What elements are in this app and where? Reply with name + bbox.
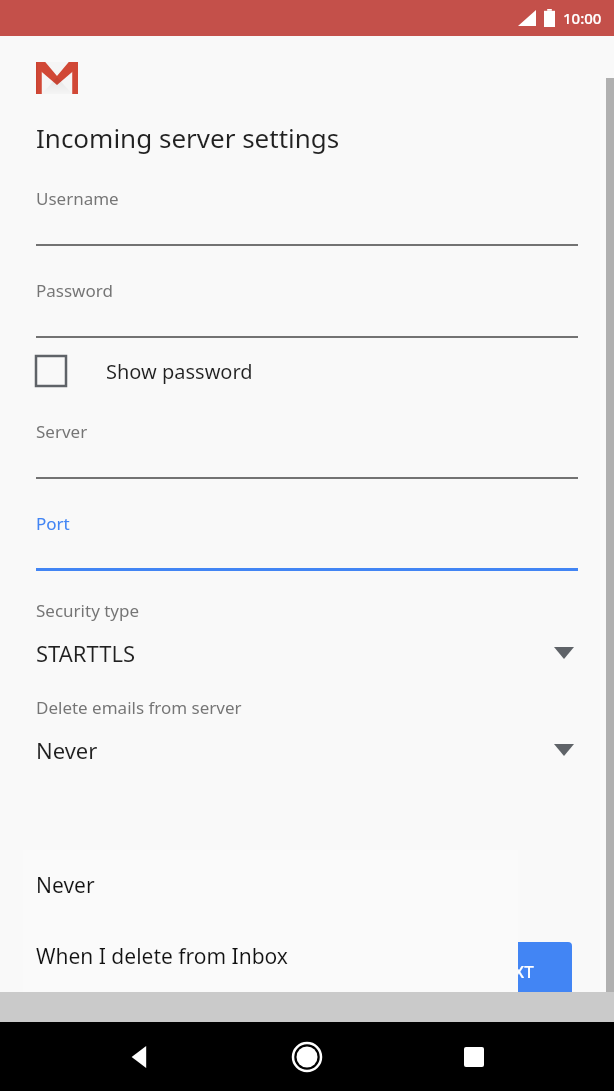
staticText: Port [36, 512, 70, 535]
staticText: Password [36, 279, 113, 302]
staticText: Server [36, 420, 88, 443]
staticText: Never [36, 871, 95, 900]
button[interactable]: Home [277, 1027, 337, 1087]
staticText: Username [36, 187, 119, 210]
button[interactable]: Delete emails from server [0, 696, 614, 765]
staticText: When I delete from Inbox [36, 942, 288, 971]
button[interactable]: NEXT [452, 942, 572, 1000]
button[interactable]: Show password [0, 346, 614, 396]
button[interactable]: Server [0, 420, 614, 479]
button[interactable]: Username [0, 187, 614, 246]
staticText: NEXT [491, 960, 534, 983]
button[interactable]: Recent apps [444, 1027, 504, 1087]
button[interactable]: When I delete from Inbox [23, 921, 518, 992]
button[interactable]: Security type [0, 599, 614, 668]
button[interactable]: Back [110, 1027, 170, 1087]
staticText: Show password [106, 358, 253, 385]
staticText: 10:00 [563, 8, 602, 28]
button[interactable]: Password [0, 279, 614, 338]
staticText: Security type [36, 599, 140, 622]
button[interactable]: Port [0, 512, 614, 571]
staticText: Never [36, 735, 98, 765]
staticText: Delete emails from server [36, 696, 242, 719]
button[interactable]: Never [23, 850, 518, 921]
staticText: Incoming server settings [36, 120, 340, 155]
staticText: STARTTLS [36, 638, 136, 668]
